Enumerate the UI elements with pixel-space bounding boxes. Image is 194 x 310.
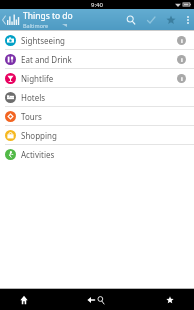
button[interactable]: Search: [96, 289, 145, 310]
staticText: Activities: [21, 149, 189, 160]
staticText: Tours: [21, 111, 189, 122]
button[interactable]: Things to do: [21, 9, 121, 30]
staticText: Hotels: [21, 92, 189, 103]
staticText: Eat and Drink: [21, 54, 173, 65]
button[interactable]: Back: [48, 289, 96, 310]
staticText: Nightlife: [21, 73, 173, 84]
button[interactable]: Navigate up: [0, 9, 21, 30]
button[interactable]: Eat and Drink: [0, 50, 194, 68]
staticText: Things to do: [23, 10, 73, 22]
staticText: Baltimore: [23, 22, 49, 29]
staticText: Sightseeing: [21, 35, 173, 46]
staticText: i: [181, 56, 183, 64]
button[interactable]: Shopping: [0, 126, 194, 144]
button[interactable]: Search: [121, 9, 141, 30]
staticText: Shopping: [21, 130, 189, 141]
staticText: 9:40: [91, 1, 103, 9]
staticText: i: [181, 75, 183, 83]
button[interactable]: Tours: [0, 107, 194, 125]
button[interactable]: Activities: [0, 145, 194, 163]
button[interactable]: Favorites: [161, 9, 181, 30]
button[interactable]: Nightlife: [0, 69, 194, 87]
button[interactable]: Recent apps: [145, 289, 194, 310]
button[interactable]: Home: [0, 289, 48, 310]
staticText: i: [181, 37, 183, 45]
button[interactable]: About Eat and Drink: [173, 51, 189, 67]
button[interactable]: Check in: [141, 9, 161, 30]
button[interactable]: About Nightlife: [173, 70, 189, 86]
button[interactable]: More options: [181, 9, 194, 30]
button[interactable]: About Sightseeing: [173, 32, 189, 48]
button[interactable]: Sightseeing: [0, 31, 194, 49]
button[interactable]: Hotels: [0, 88, 194, 106]
